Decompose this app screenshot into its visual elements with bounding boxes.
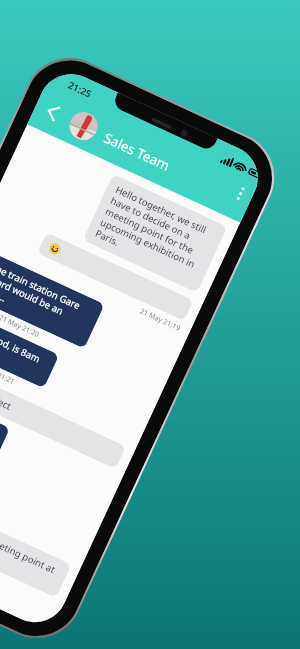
staticText: 21:25 (66, 78, 94, 101)
staticText: At the train station Gare du Nord would … (0, 256, 94, 339)
staticText: Sounds good, is 8am okay? (0, 315, 49, 379)
staticText: Jan Weder am 21 May 21:20 (0, 293, 41, 340)
button[interactable]: Back (37, 96, 69, 128)
staticText: Perfect (0, 388, 14, 413)
staticText: See you at the meeting point at the trai… (0, 506, 61, 589)
staticText: 21 May 21:19 (138, 306, 182, 334)
staticText: Hello together, we still have to decide … (93, 183, 217, 284)
button[interactable]: At the train station Gare du Nord would … (0, 246, 105, 349)
button[interactable]: Perfect (0, 378, 126, 469)
button[interactable]: See you at the meeting point at the trai… (0, 496, 72, 598)
button[interactable]: I will be there. See you there! (0, 384, 10, 462)
button[interactable]: Hello together, we still have to decide … (83, 174, 228, 293)
staticText: Mia Clark am 21 May 21:21 (0, 341, 17, 387)
button[interactable] (37, 232, 194, 321)
button[interactable]: Sounds good, is 8am okay? (0, 305, 59, 388)
staticText: Sales Team (101, 129, 173, 175)
button[interactable]: More options (230, 183, 251, 204)
